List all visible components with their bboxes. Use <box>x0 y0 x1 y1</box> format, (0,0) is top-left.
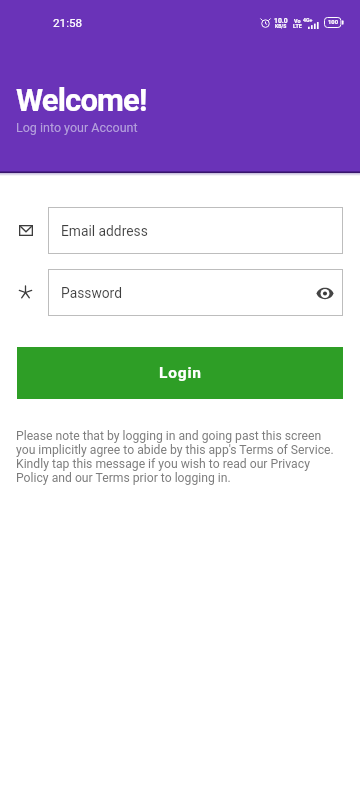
staticText: 4G+ <box>303 17 313 23</box>
staticText: Login <box>159 364 202 382</box>
staticText: 100 <box>328 19 338 26</box>
staticText: KB/S <box>275 23 287 29</box>
staticText: LTE <box>293 23 302 29</box>
staticText: 21:58 <box>53 16 83 30</box>
staticText: Email address <box>61 223 148 239</box>
staticText: Password <box>61 285 122 301</box>
staticText: Welcome! <box>16 82 147 118</box>
button[interactable]: Login <box>17 347 343 399</box>
button[interactable]: Email address <box>48 207 343 254</box>
staticText: Vo <box>294 18 301 24</box>
button[interactable]: Show password <box>310 278 340 308</box>
staticText: Log into your Account <box>16 120 138 135</box>
button[interactable]: Password <box>48 269 343 316</box>
staticText: 10.0 <box>274 17 288 25</box>
staticText: Please note that by logging in and going… <box>16 429 338 485</box>
button[interactable]: Please note that by logging in and going… <box>16 429 338 485</box>
